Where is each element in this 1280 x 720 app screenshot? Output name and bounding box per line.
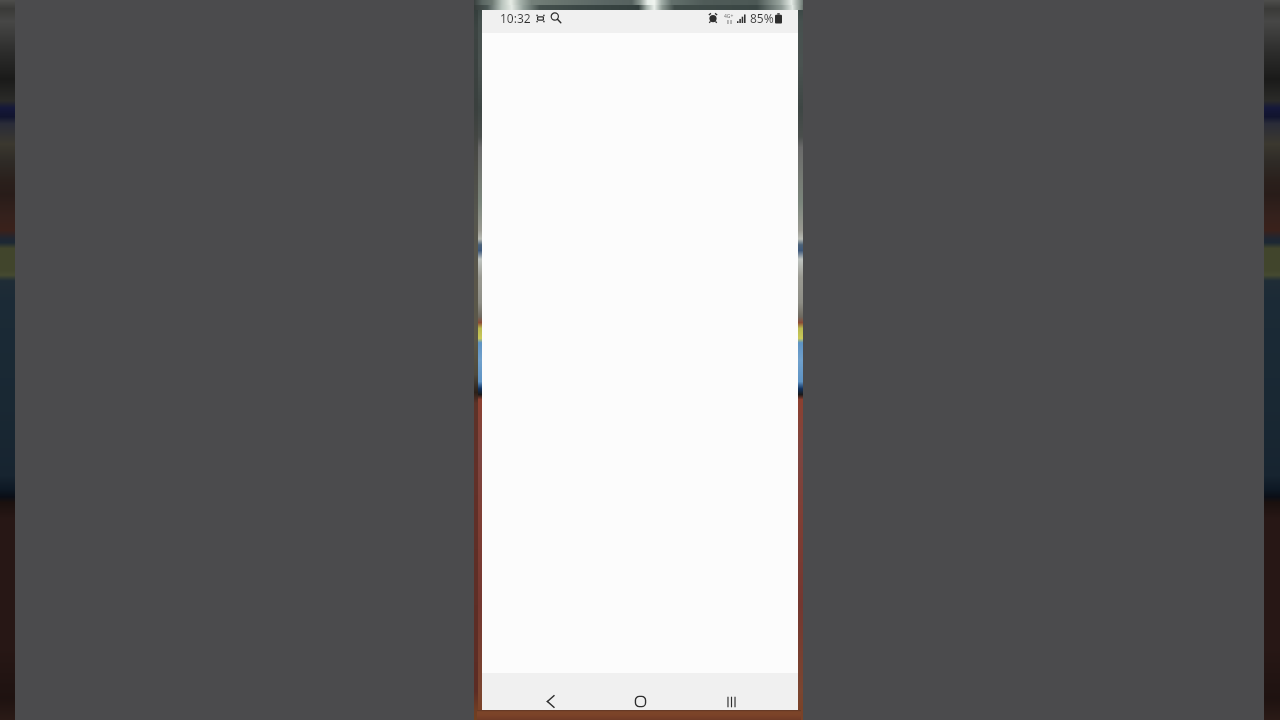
staticText: 10:32 <box>500 10 531 26</box>
button[interactable]: Recents <box>708 683 754 720</box>
button[interactable]: Back <box>527 683 573 720</box>
button[interactable]: Home <box>617 683 663 720</box>
staticText: 4G+ <box>724 13 734 20</box>
staticText: 85% <box>750 10 774 26</box>
